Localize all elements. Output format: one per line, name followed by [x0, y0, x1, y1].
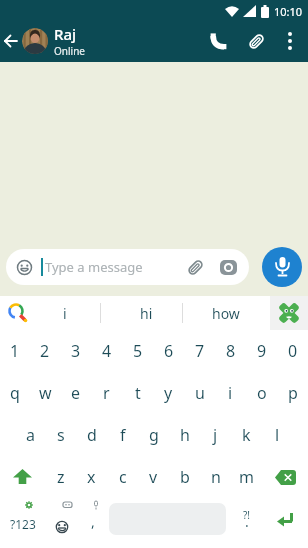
button[interactable] [0, 456, 45, 498]
staticText: 7 [195, 340, 205, 362]
button[interactable]: Type a message [6, 249, 249, 285]
staticText: 5 [133, 340, 143, 362]
button[interactable]: 1 [0, 330, 30, 372]
button[interactable]: s [45, 414, 76, 456]
button[interactable] [270, 296, 308, 330]
button[interactable]: w [30, 372, 60, 414]
button[interactable]: x [76, 456, 107, 498]
staticText: 4 [102, 340, 112, 362]
staticText: g [149, 424, 159, 446]
button[interactable] [182, 254, 208, 280]
button[interactable]: v [138, 456, 169, 498]
button[interactable]: t [122, 372, 153, 414]
staticText: how [212, 304, 240, 323]
button[interactable] [262, 498, 308, 540]
staticText: i [228, 382, 233, 404]
staticText: 3 [71, 340, 81, 362]
button[interactable]: hi [108, 296, 184, 330]
button[interactable]: u [184, 372, 215, 414]
staticText: u [195, 382, 205, 404]
button[interactable]: Raj [54, 24, 85, 58]
button[interactable]: y [153, 372, 184, 414]
staticText: j [213, 424, 218, 446]
button[interactable] [276, 20, 304, 62]
button[interactable]: i [30, 296, 100, 330]
button[interactable]: 5 [122, 330, 153, 372]
button[interactable]: r [91, 372, 122, 414]
staticText: q [10, 382, 20, 404]
staticText: 9 [257, 340, 267, 362]
button[interactable]: e [60, 372, 91, 414]
button[interactable] [7, 302, 29, 324]
button[interactable]: , [77, 498, 108, 540]
staticText: b [180, 466, 190, 488]
button[interactable]: m [231, 456, 262, 498]
button[interactable] [217, 256, 239, 278]
button[interactable]: 4 [91, 330, 122, 372]
button[interactable] [22, 28, 48, 54]
button[interactable]: 8 [215, 330, 246, 372]
staticText: 8 [226, 340, 236, 362]
staticText: t [135, 382, 141, 404]
button[interactable]: a [15, 414, 45, 456]
button[interactable] [240, 20, 272, 62]
button[interactable] [0, 20, 22, 62]
button[interactable]: c [107, 456, 138, 498]
staticText: y [164, 382, 173, 404]
staticText: , [91, 512, 95, 531]
button[interactable]: f [107, 414, 138, 456]
staticText: 2 [40, 340, 50, 362]
button[interactable]: 2 [30, 330, 60, 372]
staticText: f [120, 424, 126, 446]
staticText: e [71, 382, 81, 404]
staticText: 6 [164, 340, 174, 362]
button[interactable]: z [45, 456, 76, 498]
button[interactable]: l [262, 414, 293, 456]
staticText: 10:10 [274, 4, 303, 19]
staticText: ?123 [10, 516, 36, 532]
button[interactable]: 0 [277, 330, 308, 372]
staticText: k [242, 424, 251, 446]
staticText: o [257, 382, 267, 404]
button[interactable] [202, 20, 234, 62]
button[interactable]: n [200, 456, 231, 498]
button[interactable]: 9 [246, 330, 277, 372]
button[interactable]: k [231, 414, 262, 456]
button[interactable]: i [215, 372, 246, 414]
button[interactable]: h [169, 414, 200, 456]
button[interactable]: g [138, 414, 169, 456]
staticText: 1 [10, 340, 20, 362]
staticText: a [26, 424, 35, 446]
staticText: Online [54, 44, 85, 58]
button[interactable]: ?123 [0, 498, 46, 540]
button[interactable]: d [76, 414, 107, 456]
button[interactable] [262, 247, 302, 287]
staticText: i [63, 304, 67, 323]
staticText: m [239, 466, 254, 488]
staticText: c [119, 466, 127, 488]
staticText: z [57, 466, 65, 488]
button[interactable] [46, 498, 77, 540]
button[interactable]: 6 [153, 330, 184, 372]
button[interactable]: o [246, 372, 277, 414]
button[interactable] [13, 256, 35, 278]
button[interactable] [262, 456, 308, 498]
button[interactable]: q [0, 372, 30, 414]
button[interactable]: 7 [184, 330, 215, 372]
staticText: p [288, 382, 298, 404]
button[interactable]: p [277, 372, 308, 414]
staticText: r [103, 382, 110, 404]
button[interactable]: j [200, 414, 231, 456]
staticText: hi [140, 304, 153, 323]
staticText: x [87, 466, 96, 488]
staticText: . [245, 512, 249, 531]
staticText: ?! [243, 508, 251, 522]
button[interactable]: 3 [60, 330, 91, 372]
button[interactable]: b [169, 456, 200, 498]
staticText: w [39, 382, 52, 404]
button[interactable]: how [183, 296, 268, 330]
staticText: l [275, 424, 280, 446]
button[interactable]: ?! [231, 498, 262, 540]
staticText: n [211, 466, 221, 488]
